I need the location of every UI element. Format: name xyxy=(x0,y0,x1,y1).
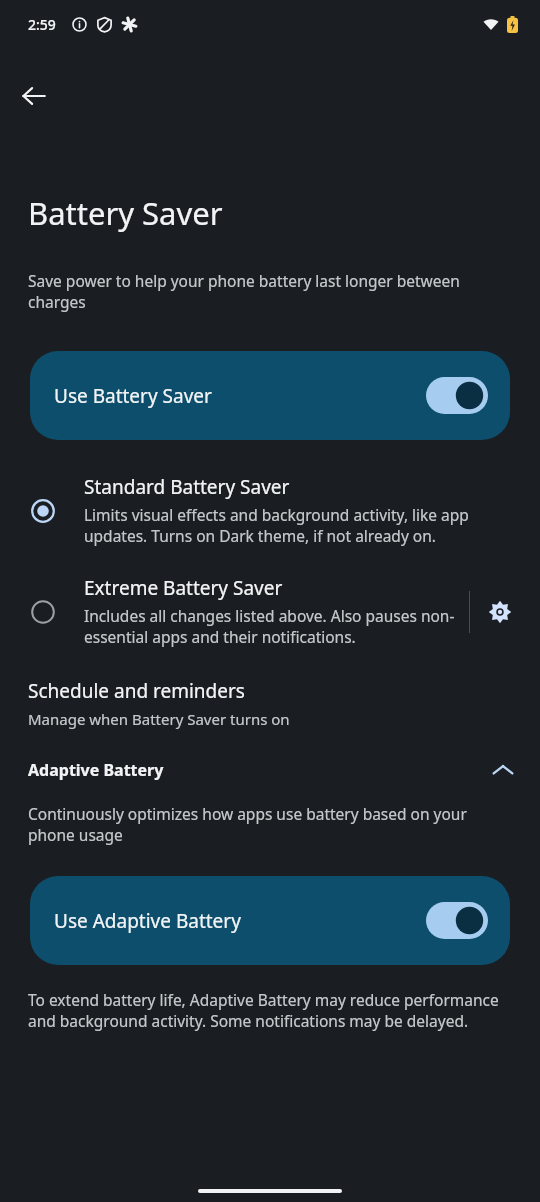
staticText: Adaptive Battery xyxy=(28,759,164,781)
button[interactable]: Standard Battery Saver xyxy=(0,468,540,553)
button[interactable]: Back xyxy=(12,74,56,118)
staticText: Extreme Battery Saver xyxy=(84,575,283,601)
button[interactable]: Schedule and reminders xyxy=(0,678,540,729)
button[interactable]: Extreme Battery Saver xyxy=(0,569,540,654)
staticText: Continuously optimizes how apps use batt… xyxy=(28,803,506,846)
button[interactable]: Adaptive Battery xyxy=(0,757,540,783)
staticText: Standard Battery Saver xyxy=(84,474,290,500)
staticText: Limits visual effects and background act… xyxy=(84,504,514,547)
staticText: To extend battery life, Adaptive Battery… xyxy=(28,989,518,1032)
button[interactable]: Use Battery Saver xyxy=(30,351,510,440)
staticText: Use Adaptive Battery xyxy=(54,908,241,934)
staticText: Save power to help your phone battery la… xyxy=(28,270,510,313)
staticText: Schedule and reminders xyxy=(28,678,245,704)
button[interactable]: Extreme Battery Saver settings xyxy=(470,582,530,642)
staticText: Battery Saver xyxy=(28,192,223,234)
staticText: Manage when Battery Saver turns on xyxy=(28,709,290,729)
button[interactable]: Use Adaptive Battery xyxy=(30,876,510,965)
staticText: 2:59 xyxy=(28,15,56,34)
staticText: Use Battery Saver xyxy=(54,383,212,409)
staticText: Includes all changes listed above. Also … xyxy=(84,605,459,648)
